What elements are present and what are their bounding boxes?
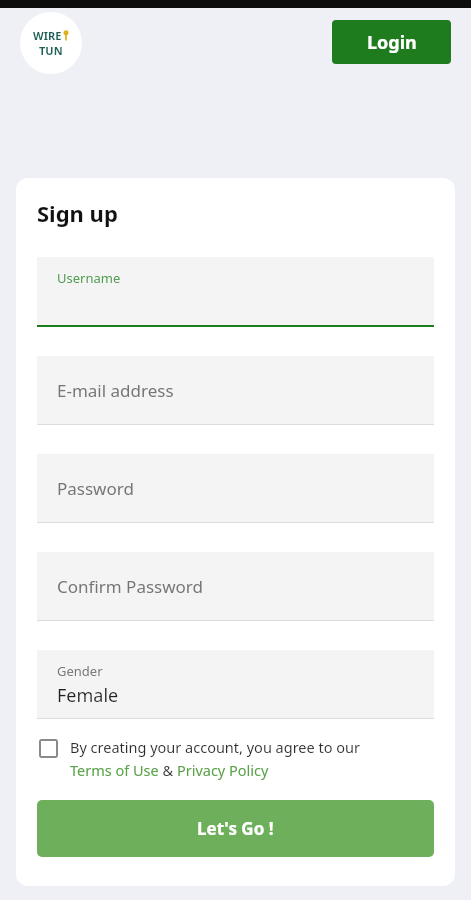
staticText: Gender xyxy=(57,662,103,680)
staticText: Login xyxy=(367,30,417,55)
staticText: Terms of Use & Privacy Policy xyxy=(70,760,269,780)
button[interactable]: E-mail address xyxy=(37,356,434,425)
button[interactable]: Username xyxy=(37,257,434,327)
button[interactable]: Agree to terms checkbox xyxy=(37,737,434,780)
staticText: TUN xyxy=(39,43,63,58)
staticText: Confirm Password xyxy=(57,575,203,598)
other: Agree to terms checkbox xyxy=(39,739,58,758)
button[interactable]: Let's Go ! xyxy=(37,800,434,857)
staticText: Let's Go ! xyxy=(197,817,274,840)
button[interactable]: Login xyxy=(332,20,451,64)
button[interactable]: Confirm Password xyxy=(37,552,434,621)
button[interactable]: Password xyxy=(37,454,434,523)
staticText: E-mail address xyxy=(57,379,174,402)
other: Wire Tun logo xyxy=(20,12,82,74)
staticText: Username xyxy=(57,269,121,287)
staticText: By creating your account, you agree to o… xyxy=(70,737,360,757)
button[interactable]: Gender xyxy=(37,650,434,719)
staticText: Password xyxy=(57,477,134,500)
staticText: WIRE xyxy=(33,28,62,43)
staticText: Female xyxy=(57,683,119,708)
staticText: Sign up xyxy=(37,198,118,228)
